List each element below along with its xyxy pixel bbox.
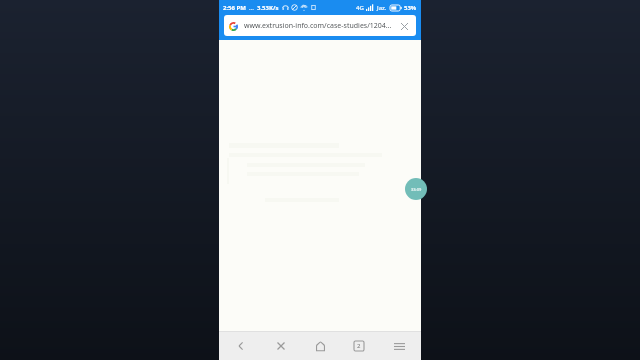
staticText: 4G	[356, 4, 364, 12]
button[interactable]: Stop loading	[264, 332, 298, 360]
staticText: 2	[357, 342, 361, 350]
staticText: www.extrusion-info.com/case-studies/1204…	[244, 21, 393, 31]
staticText: 53%	[404, 4, 417, 12]
button[interactable]: www.extrusion-info.com/case-studies/1204…	[224, 15, 416, 36]
button[interactable]: Tabs	[342, 332, 376, 360]
staticText: 2:56 PM	[223, 4, 246, 12]
button[interactable]: Chat	[405, 178, 427, 200]
button[interactable]: Back	[224, 332, 258, 360]
staticText: 3.53K/s	[257, 4, 279, 12]
button[interactable]: Home	[303, 332, 337, 360]
button[interactable]: Menu	[382, 332, 416, 360]
button[interactable]: Close tab	[397, 19, 411, 33]
staticText: Jaz.	[377, 4, 387, 12]
staticText: ...	[249, 4, 254, 12]
staticText: 33:09	[411, 187, 422, 192]
